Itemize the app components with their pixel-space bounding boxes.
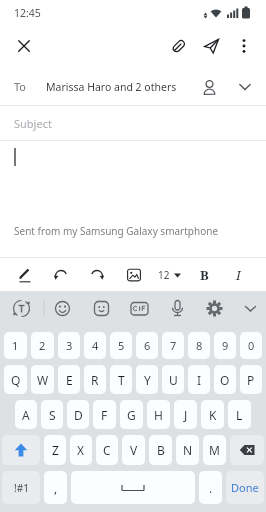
staticText: 3 (66, 338, 73, 353)
staticText: B (157, 442, 165, 458)
staticText: Y (144, 372, 151, 388)
button[interactable]: , (44, 471, 67, 504)
button[interactable]: N (176, 435, 199, 465)
button[interactable]: D (67, 400, 89, 429)
button[interactable]: 2 (31, 332, 54, 359)
button[interactable] (2, 435, 40, 465)
button[interactable]: K (201, 400, 224, 429)
staticText: Subject (14, 116, 52, 131)
staticText: 12 (158, 268, 170, 282)
staticText: F (101, 407, 108, 423)
staticText: 12:45 (14, 6, 41, 20)
staticText: Sent from my Samsung Galaxy smartphone (14, 224, 219, 238)
staticText: V (130, 442, 138, 458)
staticText: T (118, 372, 125, 388)
staticText: Done (231, 480, 259, 495)
button[interactable]: !#1 (2, 471, 40, 504)
button[interactable]: Y (136, 365, 158, 394)
staticText: D (74, 407, 83, 423)
staticText: B (200, 266, 209, 284)
button[interactable] (89, 296, 114, 321)
button[interactable]: M (203, 435, 226, 465)
button[interactable]: Sent from my Samsung Galaxy smartphone (0, 141, 266, 257)
staticText: , (54, 480, 58, 496)
button[interactable] (122, 263, 146, 287)
button[interactable]: Done (226, 471, 264, 504)
button[interactable] (9, 296, 34, 321)
staticText: To (14, 79, 27, 94)
button[interactable]: 0 (240, 332, 262, 359)
button[interactable] (13, 263, 37, 287)
button[interactable] (50, 296, 75, 321)
button[interactable]: Q (4, 365, 27, 394)
button[interactable]: F (93, 400, 116, 429)
staticText: P (247, 372, 255, 388)
button[interactable] (165, 296, 190, 321)
button[interactable]: B (193, 264, 215, 286)
staticText: 4 (92, 338, 99, 353)
staticText: Z (52, 442, 59, 458)
staticText: I (236, 266, 241, 284)
button[interactable] (127, 296, 152, 321)
staticText: I (197, 372, 202, 388)
button[interactable]: . (199, 471, 222, 504)
button[interactable]: 4 (84, 332, 106, 359)
button[interactable]: J (174, 400, 197, 429)
button[interactable]: 3 (58, 332, 80, 359)
button[interactable] (202, 296, 227, 321)
staticText: E (66, 372, 73, 388)
button[interactable] (238, 296, 263, 321)
staticText: U (169, 372, 178, 388)
staticText: . (209, 480, 213, 496)
button[interactable] (194, 72, 224, 102)
staticText: W (37, 372, 49, 388)
button[interactable]: 8 (188, 332, 210, 359)
staticText: R (91, 372, 99, 388)
staticText: 9 (222, 338, 229, 353)
button[interactable]: H (147, 400, 170, 429)
button[interactable] (230, 435, 264, 465)
button[interactable]: R (84, 365, 106, 394)
button[interactable]: A (15, 400, 37, 429)
button[interactable]: 9 (214, 332, 236, 359)
button[interactable]: 1 (4, 332, 27, 359)
staticText: G (127, 407, 136, 423)
button[interactable]: 12 (158, 268, 181, 282)
staticText: Q (11, 372, 21, 388)
staticText: 0 (248, 338, 255, 353)
button[interactable] (229, 31, 259, 61)
button[interactable]: O (214, 365, 236, 394)
button[interactable]: U (162, 365, 184, 394)
staticText: !#1 (14, 481, 29, 495)
button[interactable]: X (70, 435, 92, 465)
button[interactable] (230, 72, 260, 102)
button[interactable] (85, 263, 109, 287)
button[interactable]: L (228, 400, 251, 429)
button[interactable]: 7 (162, 332, 184, 359)
button[interactable] (163, 31, 193, 61)
staticText: J (184, 407, 188, 423)
staticText: N (183, 442, 193, 458)
button[interactable]: I (227, 264, 249, 286)
button[interactable]: V (122, 435, 145, 465)
button[interactable]: 5 (110, 332, 132, 359)
button[interactable] (12, 34, 36, 58)
button[interactable]: P (240, 365, 262, 394)
button[interactable] (196, 31, 226, 61)
button[interactable]: C (96, 435, 118, 465)
staticText: C (103, 442, 111, 458)
staticText: O (220, 372, 230, 388)
button[interactable]: G (120, 400, 143, 429)
button[interactable]: S (41, 400, 63, 429)
button[interactable]: To (0, 68, 266, 105)
button[interactable]: Z (44, 435, 66, 465)
button[interactable]: 6 (136, 332, 158, 359)
button[interactable]: W (31, 365, 54, 394)
button[interactable] (71, 471, 195, 504)
button[interactable] (49, 263, 73, 287)
button[interactable]: I (188, 365, 210, 394)
button[interactable]: T (110, 365, 132, 394)
button[interactable]: Subject (0, 106, 266, 140)
button[interactable]: B (149, 435, 172, 465)
button[interactable]: E (58, 365, 80, 394)
